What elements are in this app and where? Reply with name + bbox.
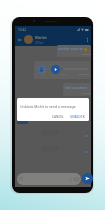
- button[interactable]: [17, 173, 81, 185]
- button[interactable]: More options: [84, 33, 91, 46]
- button[interactable]: another surprise: [57, 45, 91, 57]
- button[interactable]: Play voice message: [51, 65, 60, 74]
- staticText: Mohit: [35, 35, 47, 41]
- button[interactable]: Play voice message: [34, 61, 90, 79]
- staticText: Unblock Mohit to send a message: [20, 104, 76, 109]
- staticText: CANCEL: [52, 115, 64, 119]
- button[interactable]: take a vacation: [63, 83, 91, 96]
- staticText: 12:06 PM: [81, 92, 91, 95]
- staticText: 12:04 PM: [81, 53, 91, 56]
- button[interactable]: Back: [15, 33, 24, 46]
- staticText: Offline: [35, 41, 44, 45]
- staticText: take a vacation: [65, 86, 87, 90]
- button[interactable]: CANCEL: [50, 114, 66, 120]
- staticText: UNBLOCK: [70, 115, 85, 119]
- staticText: 12:05 PM: [78, 72, 89, 75]
- staticText: 10:42: [18, 28, 27, 32]
- button[interactable]: Contact photo: [24, 35, 33, 44]
- staticText: another surprise: [58, 47, 83, 51]
- button[interactable]: Send: [82, 173, 93, 184]
- button[interactable]: UNBLOCK: [68, 114, 87, 120]
- staticText: 0:12: [61, 72, 66, 75]
